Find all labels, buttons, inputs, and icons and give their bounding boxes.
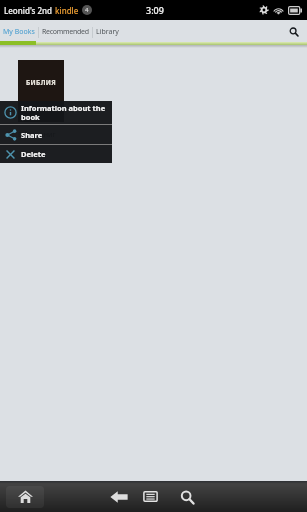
button[interactable]: Share <box>0 125 112 144</box>
staticText: My Books <box>3 27 35 37</box>
staticText: Share <box>21 130 43 140</box>
staticText: Біблія книг <box>18 130 56 140</box>
staticText: Information about the book <box>21 103 106 122</box>
button[interactable]: Home <box>6 486 44 508</box>
button[interactable]: Search <box>175 485 199 509</box>
button[interactable]: My Books <box>3 21 35 42</box>
staticText: Recommended <box>42 27 89 37</box>
staticText: 4 <box>85 6 89 14</box>
staticText: Delete <box>21 149 46 159</box>
staticText: БИБЛИЯ <box>26 78 57 87</box>
button[interactable]: Recommended <box>42 21 89 42</box>
button[interactable]: Search <box>283 20 307 41</box>
staticText: Leonid's 2nd <box>4 5 55 16</box>
button[interactable]: Library <box>96 21 119 42</box>
button[interactable]: Back <box>106 485 132 509</box>
button[interactable]: Delete <box>0 145 112 163</box>
staticText: Library <box>96 27 119 37</box>
button[interactable]: Information about the book <box>0 101 112 124</box>
staticText: 3:09 <box>146 4 164 16</box>
staticText: kindle <box>55 5 79 16</box>
button[interactable]: Menu <box>139 485 162 508</box>
button[interactable]: БИБЛИЯ <box>18 60 64 122</box>
